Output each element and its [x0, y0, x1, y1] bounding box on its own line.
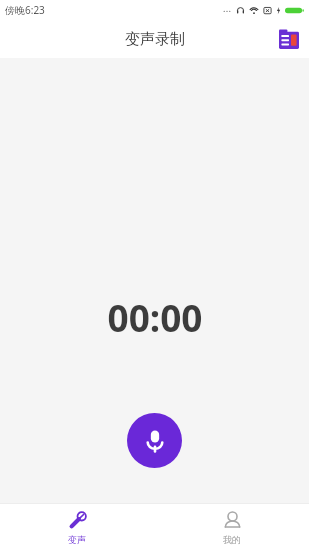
staticText: 我的: [223, 534, 241, 545]
staticText: 00:00: [107, 292, 203, 342]
button[interactable]: 我的: [197, 506, 267, 549]
button[interactable]: 录音列表: [276, 26, 302, 52]
staticText: 变声: [68, 534, 86, 545]
button[interactable]: 开始录音: [127, 413, 182, 468]
button[interactable]: 变声: [42, 506, 112, 549]
staticText: 变声录制: [125, 30, 185, 49]
staticText: 傍晚6:23: [5, 3, 45, 17]
